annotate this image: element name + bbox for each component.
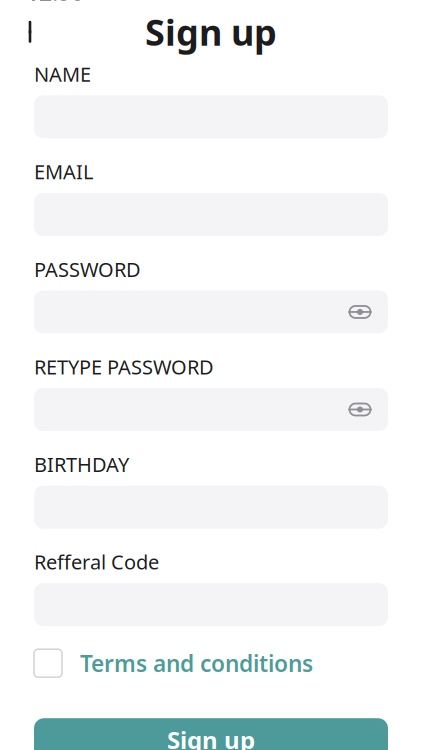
staticText: Sign up [145,8,277,56]
button[interactable]: Terms and conditions [62,642,313,684]
button[interactable]: PASSWORD [34,290,388,333]
staticText: RETYPE PASSWORD [34,353,214,380]
staticText: EMAIL [34,158,93,185]
staticText: PASSWORD [34,256,141,282]
button[interactable]: Sign up [34,718,388,750]
staticText: NAME [34,61,91,87]
staticText: Sign up [167,724,255,750]
staticText: BIRTHDAY [34,451,129,478]
staticText: Terms and conditions [80,648,313,678]
button[interactable]: RETYPE PASSWORD [34,388,388,431]
staticText: 12:58 [26,0,84,7]
button[interactable]: Back [10,10,54,54]
button[interactable]: Accept terms and conditions [34,649,62,677]
staticText: Refferal Code [34,549,159,575]
